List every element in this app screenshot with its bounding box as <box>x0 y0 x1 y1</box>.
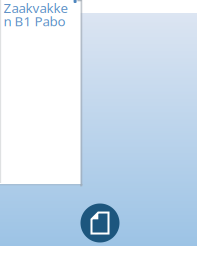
button[interactable]: Zaakvakke <box>0 0 80 184</box>
staticText: n B1 Pabo <box>3 12 65 30</box>
button[interactable]: Open document <box>80 203 119 242</box>
staticText: Zaakvakke <box>3 0 68 17</box>
